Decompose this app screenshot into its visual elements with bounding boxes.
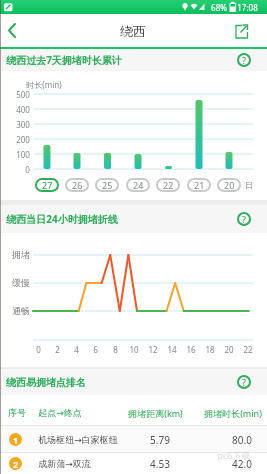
staticText: 成新蒲→双流 [38, 458, 91, 469]
staticText: 20 [224, 344, 234, 355]
staticText: 1 [13, 434, 19, 446]
staticText: 拥堵距离(km) [128, 407, 183, 419]
staticText: 缓慢 [12, 277, 30, 288]
button[interactable]: 26 [65, 178, 89, 192]
staticText: 绕西易拥堵点排名 [6, 376, 86, 389]
staticText: 机场枢纽→白家枢纽 [38, 434, 118, 445]
staticText: 500 [16, 89, 30, 100]
button[interactable]: 27 [35, 178, 59, 192]
staticText: 拥堵 [12, 249, 30, 260]
staticText: 18 [205, 344, 215, 355]
staticText: 400 [16, 104, 30, 115]
staticText: 通畅 [12, 305, 30, 316]
staticText: 68% [211, 2, 227, 13]
staticText: pc6下载 [217, 449, 251, 461]
button[interactable]: 1 [0, 426, 267, 453]
staticText: 21 [194, 179, 205, 191]
button[interactable]: 22 [156, 178, 180, 192]
staticText: 26 [72, 179, 83, 191]
staticText: 14 [167, 344, 177, 355]
staticText: ? [242, 54, 246, 66]
staticText: 16 [186, 344, 196, 355]
staticText: 100 [16, 149, 30, 160]
staticText: 8 [113, 344, 118, 355]
staticText: 绕西当日24小时拥堵折线 [6, 212, 118, 226]
staticText: 时长(min) [26, 79, 62, 90]
staticText: 22 [163, 179, 174, 191]
staticText: 2 [55, 344, 60, 355]
staticText: 日 [245, 180, 253, 190]
staticText: 25 [102, 179, 113, 191]
staticText: 300 [16, 119, 30, 130]
staticText: 200 [16, 134, 30, 145]
staticText: 24 [133, 179, 144, 191]
staticText: 80.0 [232, 433, 252, 446]
staticText: ? [242, 376, 246, 388]
button[interactable] [0, 14, 30, 47]
button[interactable]: 21 [187, 178, 211, 192]
staticText: 10 [129, 344, 139, 355]
button[interactable]: 2 [0, 453, 267, 474]
staticText: 20 [224, 179, 235, 191]
staticText: 22 [243, 344, 253, 355]
button[interactable]: 20 [217, 178, 241, 192]
staticText: 序号 [8, 407, 26, 418]
staticText: 17:08 [237, 2, 258, 13]
button[interactable]: ? [237, 375, 251, 389]
button[interactable]: 24 [126, 178, 150, 192]
staticText: 绕西 [120, 23, 146, 39]
staticText: 起点→终点 [38, 407, 82, 418]
staticText: 42.0 [232, 457, 252, 470]
button[interactable] [230, 20, 252, 42]
staticText: 27 [42, 179, 53, 191]
staticText: 0 [25, 164, 30, 175]
staticText: 4.53 [150, 457, 170, 470]
button[interactable]: ? [237, 212, 251, 226]
button[interactable]: 25 [95, 178, 119, 192]
staticText: 6 [93, 344, 98, 355]
staticText: 4 [74, 344, 79, 355]
staticText: 绕西过去7天拥堵时长累计 [6, 53, 122, 67]
staticText: 12 [148, 344, 158, 355]
staticText: ? [242, 213, 246, 225]
staticText: 2 [13, 458, 19, 470]
staticText: 拥堵时长(min) [204, 407, 262, 419]
staticText: 0 [36, 344, 41, 355]
button[interactable]: ? [237, 53, 251, 67]
staticText: 5.79 [150, 433, 170, 446]
